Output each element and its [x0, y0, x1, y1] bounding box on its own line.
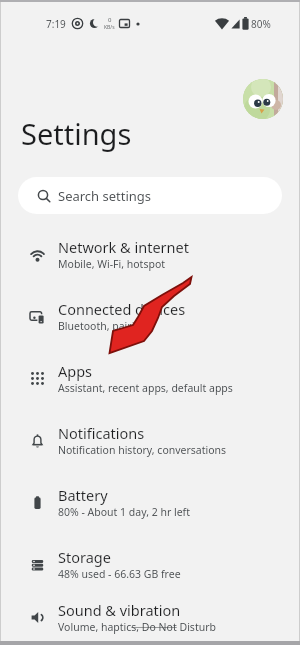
button[interactable]: Notifications: [0, 409, 300, 471]
staticText: Assistant, recent apps, default apps: [58, 381, 233, 395]
staticText: Mobile, Wi-Fi, hotspot: [58, 257, 166, 271]
staticText: Battery: [58, 485, 108, 505]
staticText: 80% - About 1 day, 2 hr left: [58, 505, 190, 519]
staticText: Connected devices: [58, 299, 186, 319]
staticText: Apps: [58, 361, 93, 381]
button[interactable]: Apps: [0, 347, 300, 409]
button[interactable]: Battery: [0, 471, 300, 533]
staticText: 0: [108, 16, 112, 24]
button[interactable]: Sound & vibration: [0, 586, 300, 645]
button[interactable]: Network & internet: [0, 223, 300, 285]
staticText: 48% used - 66.63 GB free: [58, 567, 181, 581]
staticText: Bluetooth, pairing: [58, 319, 148, 333]
staticText: 7:19: [46, 17, 66, 31]
staticText: Volume, haptics, Do Not Disturb: [58, 620, 216, 634]
button[interactable]: [243, 79, 283, 119]
staticText: Search settings: [58, 187, 152, 205]
staticText: Notification history, conversations: [58, 443, 227, 457]
staticText: Settings: [21, 114, 132, 153]
staticText: Sound & vibration: [58, 600, 181, 620]
staticText: 80%: [251, 17, 271, 31]
staticText: KB/s: [104, 24, 115, 31]
button[interactable]: Storage: [0, 533, 300, 595]
staticText: Notifications: [58, 423, 145, 443]
button[interactable]: Search settings: [18, 177, 282, 214]
staticText: Network & internet: [58, 237, 189, 257]
staticText: Storage: [58, 547, 111, 567]
button[interactable]: Connected devices: [0, 285, 300, 347]
